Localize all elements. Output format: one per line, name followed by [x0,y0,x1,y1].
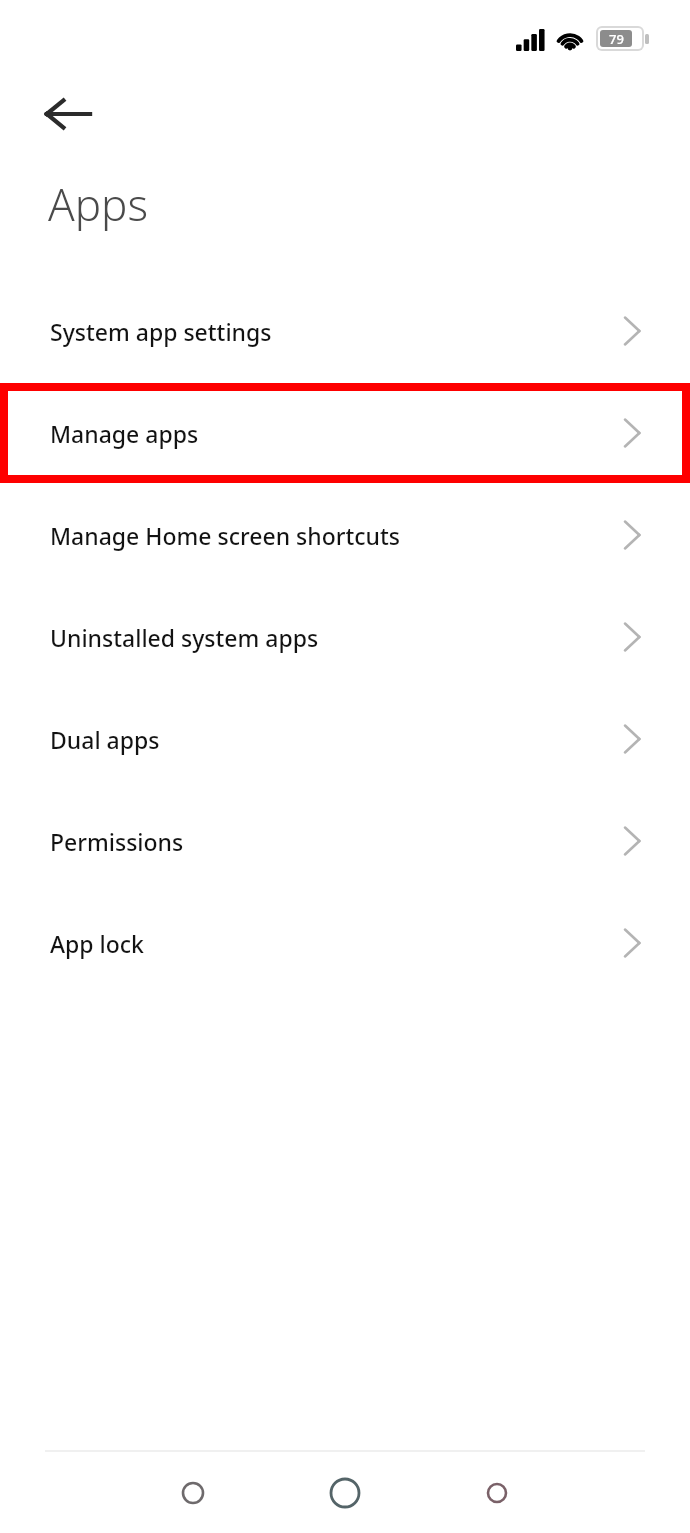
button[interactable]: Back [30,76,106,152]
button[interactable]: Back [467,1463,527,1523]
button[interactable]: App lock [0,892,690,994]
staticText: App lock [50,928,144,959]
button[interactable]: Manage Home screen shortcuts [0,484,690,586]
staticText: Apps [48,174,149,234]
staticText: Dual apps [50,724,160,755]
button[interactable]: System app settings [0,280,690,382]
button[interactable]: Uninstalled system apps [0,586,690,688]
staticText: System app settings [50,316,272,347]
staticText: Uninstalled system apps [50,622,319,653]
button[interactable]: Dual apps [0,688,690,790]
button[interactable]: Home [315,1463,375,1523]
button[interactable]: Recents [163,1463,223,1523]
button[interactable]: Permissions [0,790,690,892]
staticText: Manage apps [50,418,199,449]
staticText: Manage Home screen shortcuts [50,520,400,551]
staticText: Permissions [50,826,184,857]
staticText: 79 [609,30,624,47]
button[interactable]: Manage apps [0,382,690,484]
